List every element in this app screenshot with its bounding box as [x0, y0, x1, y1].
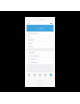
button[interactable]: Do Not Disturb: [26, 58, 53, 61]
button[interactable]: Airplane Mode: [26, 32, 53, 35]
staticText: Notifications: [28, 52, 36, 54]
staticText: Home: [48, 36, 52, 37]
staticText: Edit: [50, 27, 52, 29]
staticText: Settings: [36, 27, 43, 29]
button[interactable]: Hotspot: [26, 45, 53, 48]
staticText: Hotspot: [28, 46, 33, 48]
staticText: Screen Time: [28, 62, 37, 63]
button[interactable]: Notifications: [26, 51, 53, 54]
button[interactable]: Tab: [37, 72, 43, 78]
staticText: Do Not Disturb: [28, 58, 37, 60]
button[interactable]: Screen Time: [26, 61, 53, 64]
button[interactable]: Bluetooth: [26, 38, 53, 42]
button[interactable]: Tab: [48, 72, 53, 78]
button[interactable]: Wi-Fi: [26, 35, 53, 38]
staticText: Cellular: [28, 42, 33, 44]
staticText: Wi-Fi: [28, 36, 30, 37]
staticText: 9:41: [28, 22, 31, 24]
button[interactable]: Tab: [43, 72, 48, 78]
button[interactable]: Tab: [32, 72, 37, 78]
button[interactable]: Tab: [26, 72, 32, 78]
staticText: Off: [50, 46, 52, 48]
button[interactable]: Cellular: [26, 42, 53, 45]
staticText: Bluetooth: [28, 39, 34, 41]
button[interactable]: Sounds & Haptics: [26, 54, 53, 58]
button[interactable]: Edit: [49, 25, 53, 31]
staticText: On: [50, 39, 52, 41]
staticText: Sounds & Haptics: [28, 55, 40, 57]
staticText: Airplane Mode: [28, 32, 38, 34]
